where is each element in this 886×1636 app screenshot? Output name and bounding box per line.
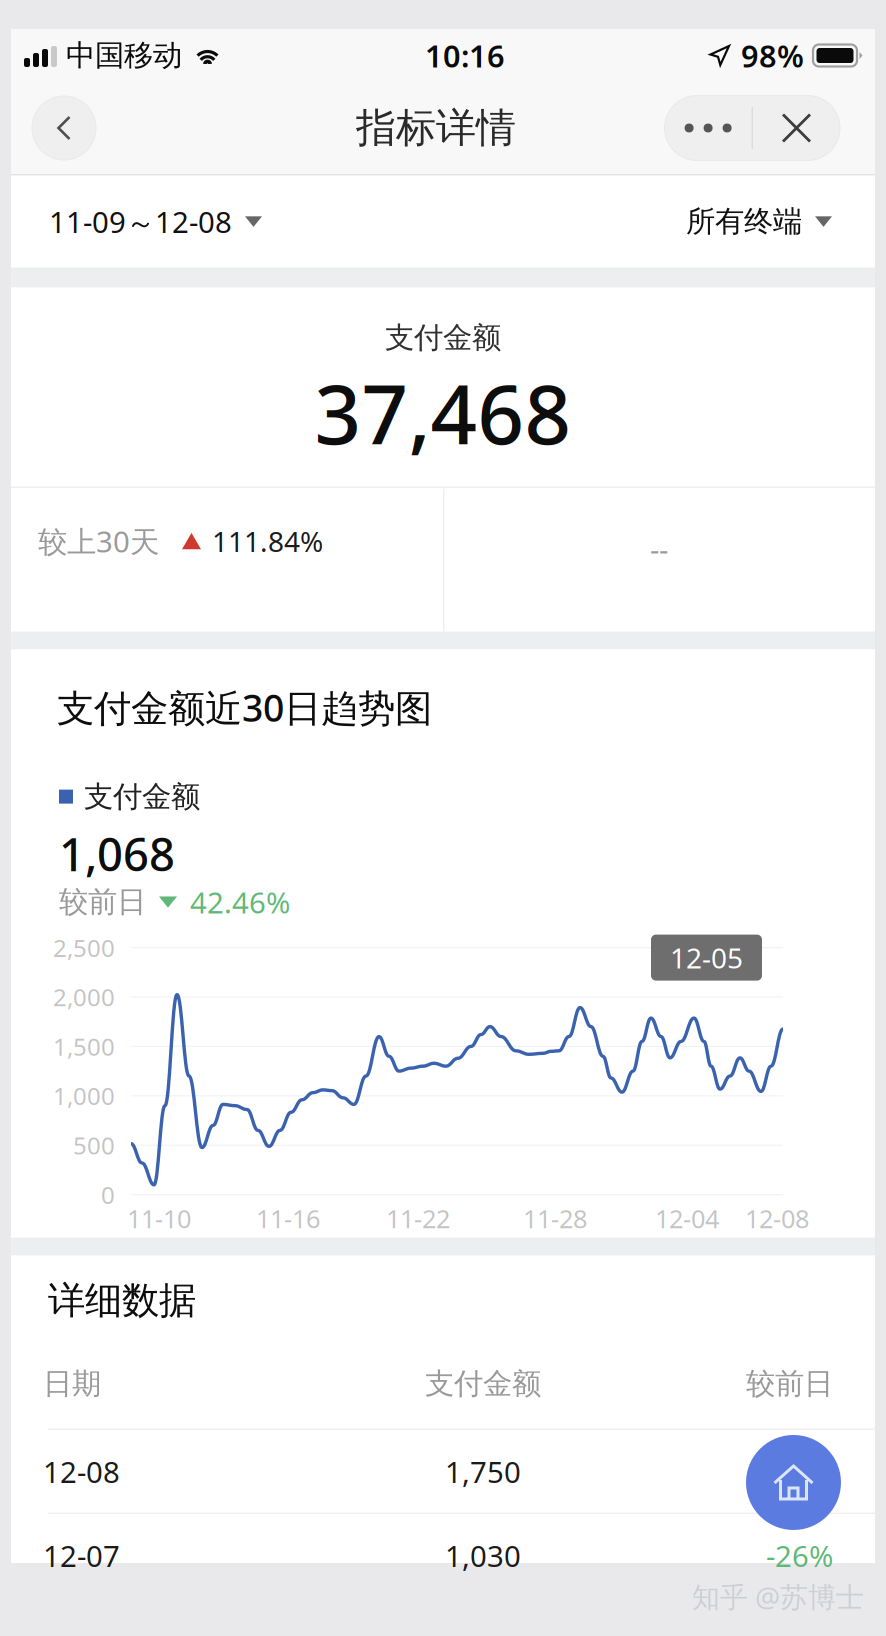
staticText: 1,000 bbox=[53, 1080, 115, 1112]
staticText: 12-05 bbox=[670, 939, 743, 976]
staticText: -26% bbox=[766, 1536, 833, 1575]
staticText: 11-22 bbox=[386, 1202, 450, 1235]
staticText: 1,500 bbox=[53, 1030, 115, 1062]
staticText: 日期 bbox=[43, 1366, 101, 1402]
staticText: 2,000 bbox=[53, 981, 115, 1013]
staticText: 2,500 bbox=[53, 932, 115, 964]
button[interactable]: 12-08 bbox=[11, 1430, 875, 1514]
staticText: 指标详情 bbox=[356, 103, 516, 152]
button[interactable]: More bbox=[665, 95, 752, 160]
staticText: 12-08 bbox=[745, 1202, 809, 1235]
staticText: 所有终端 bbox=[686, 204, 802, 240]
staticText: 1,068 bbox=[59, 824, 175, 884]
button[interactable]: 11-09～12-08 bbox=[49, 202, 262, 241]
staticText: 0 bbox=[101, 1179, 115, 1211]
staticText: 支付金额 bbox=[425, 1366, 541, 1402]
staticText: 较上30天 bbox=[38, 522, 159, 561]
staticText: 11-10 bbox=[127, 1202, 191, 1235]
staticText: 11-28 bbox=[523, 1202, 587, 1235]
staticText: 12-07 bbox=[43, 1536, 120, 1575]
staticText: 10:16 bbox=[425, 35, 505, 76]
staticText: 支付金额近30日趋势图 bbox=[57, 683, 432, 732]
staticText: 98% bbox=[741, 35, 804, 76]
staticText: 11-09～12-08 bbox=[49, 202, 232, 241]
staticText: 支付金额 bbox=[84, 779, 200, 815]
staticText: +69% bbox=[758, 1452, 833, 1491]
staticText: 12-04 bbox=[655, 1202, 719, 1235]
button[interactable]: Back bbox=[32, 96, 96, 160]
button[interactable]: 12-07 bbox=[11, 1514, 875, 1598]
staticText: -- bbox=[650, 530, 668, 569]
staticText: 111.84% bbox=[212, 522, 323, 560]
staticText: 较前日 bbox=[746, 1366, 833, 1402]
staticText: 1,030 bbox=[445, 1536, 521, 1575]
button[interactable]: 所有终端 bbox=[686, 204, 832, 240]
staticText: 1,750 bbox=[445, 1452, 521, 1491]
staticText: 知乎 @苏博士 bbox=[692, 1578, 864, 1615]
staticText: 较前日 bbox=[59, 884, 146, 920]
staticText: 详细数据 bbox=[48, 1278, 196, 1323]
staticText: 500 bbox=[73, 1129, 115, 1161]
button[interactable]: Home bbox=[746, 1435, 841, 1530]
button[interactable]: Close bbox=[753, 95, 840, 160]
staticText: 12-08 bbox=[43, 1452, 120, 1491]
staticText: 37,468 bbox=[314, 359, 571, 467]
staticText: 11-16 bbox=[256, 1202, 320, 1235]
staticText: 支付金额 bbox=[385, 320, 501, 356]
staticText: 42.46% bbox=[190, 883, 290, 922]
staticText: 中国移动 bbox=[66, 37, 182, 73]
